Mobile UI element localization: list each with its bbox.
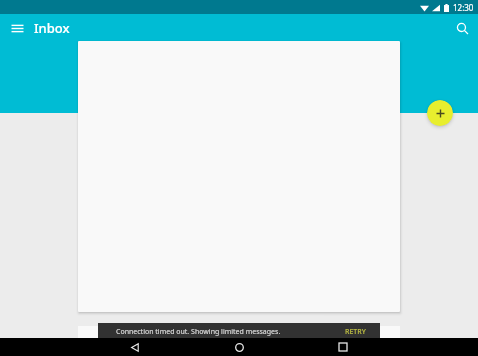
button[interactable]: Connection timed out. Showing limited me…	[98, 323, 380, 340]
staticText: Inbox	[34, 19, 70, 37]
button[interactable]: Back	[115, 338, 155, 356]
button[interactable]: Search	[450, 16, 474, 40]
button[interactable]: Recent apps	[323, 338, 363, 356]
staticText: RETRY	[345, 327, 366, 337]
button[interactable]: RETRY	[345, 327, 366, 337]
button[interactable]	[78, 326, 400, 338]
button[interactable]: Compose new message	[427, 100, 453, 126]
staticText: 12:30	[453, 2, 474, 13]
button[interactable]: Home	[219, 338, 259, 356]
button[interactable]: Open navigation drawer	[5, 16, 29, 40]
staticText: Connection timed out. Showing limited me…	[116, 327, 281, 337]
